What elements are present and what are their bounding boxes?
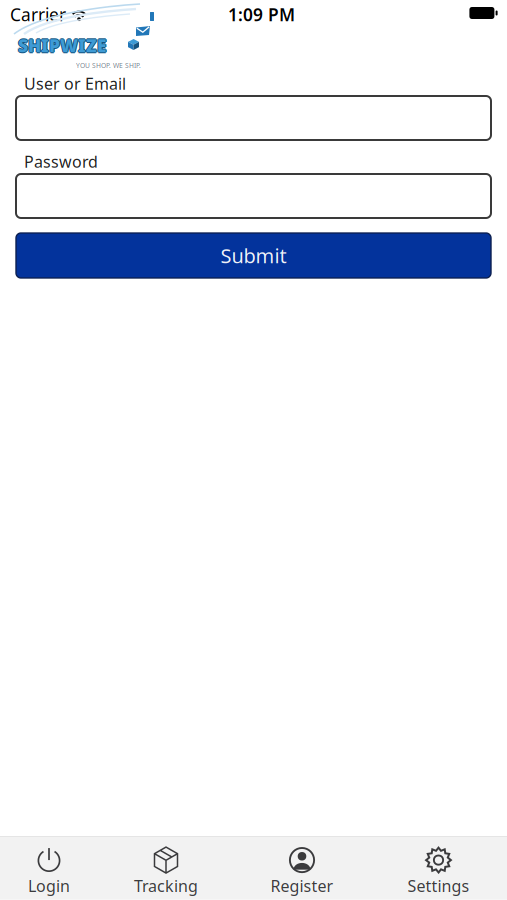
button[interactable]: Register — [234, 843, 370, 899]
staticText: Password — [24, 151, 98, 172]
staticText: SHIPWIZE — [18, 35, 107, 58]
staticText: Carrier — [10, 3, 66, 26]
staticText: Register — [270, 875, 333, 896]
staticText: Settings — [407, 875, 469, 896]
staticText: User or Email — [24, 73, 126, 94]
staticText: Tracking — [134, 875, 198, 896]
staticText: SHIPWIZE — [18, 34, 107, 57]
staticText: SHIPWIZE — [18, 33, 107, 56]
button[interactable]: Settings — [370, 843, 507, 899]
button[interactable]: Login — [0, 843, 98, 899]
button[interactable]: Tracking — [98, 843, 234, 899]
staticText: Submit — [220, 242, 286, 269]
button[interactable]: Submit — [16, 233, 491, 278]
staticText: SHIPWIZE — [17, 34, 106, 57]
staticText: SHIPWIZE — [19, 34, 108, 57]
staticText: YOU SHOP. WE SHIP. — [76, 61, 141, 70]
staticText: 1:09 PM — [228, 3, 295, 26]
staticText: Login — [28, 875, 70, 896]
